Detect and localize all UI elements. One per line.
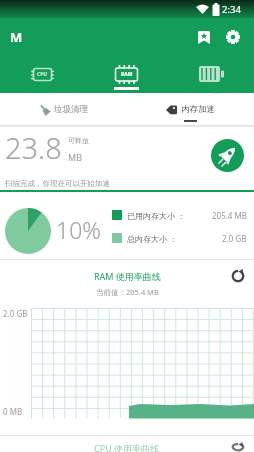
staticText: M (10, 28, 23, 46)
staticText: RAM 使用率曲线 (94, 270, 161, 282)
staticText: 垃圾清理 (54, 104, 88, 115)
staticText: 扫描完成，你现在可以开始加速 (5, 179, 110, 188)
button[interactable] (194, 27, 214, 47)
button[interactable] (223, 27, 243, 47)
staticText: 10% (56, 214, 101, 245)
button[interactable] (211, 139, 244, 172)
staticText: 23.8 (5, 128, 62, 167)
staticText: MB (68, 151, 83, 163)
staticText: 2.0 GB (222, 233, 247, 243)
staticText: 当前值：205.4 MB (96, 287, 159, 297)
staticText: 0 MB (3, 406, 23, 417)
button[interactable]: CPU (0, 55, 84, 93)
staticText: RAM (121, 71, 133, 78)
staticText: 2:34 (222, 3, 241, 16)
staticText: 205.4 MB (212, 210, 247, 220)
button[interactable]: 垃圾清理 (0, 93, 127, 125)
staticText: 总内存大小 ： (127, 233, 178, 243)
staticText: CPU 使用率曲线 (94, 442, 160, 452)
button[interactable]: 内存加速 (127, 93, 254, 125)
staticText: 内存加速 (181, 104, 215, 115)
button[interactable] (231, 442, 245, 452)
staticText: 已用内存大小 ： (127, 210, 186, 220)
button[interactable]: RAM (84, 55, 169, 93)
button[interactable] (231, 269, 245, 283)
staticText: CPU (37, 71, 48, 78)
staticText: 可释放 (68, 136, 89, 145)
button[interactable] (169, 55, 254, 93)
staticText: 2.0 GB (3, 308, 28, 319)
